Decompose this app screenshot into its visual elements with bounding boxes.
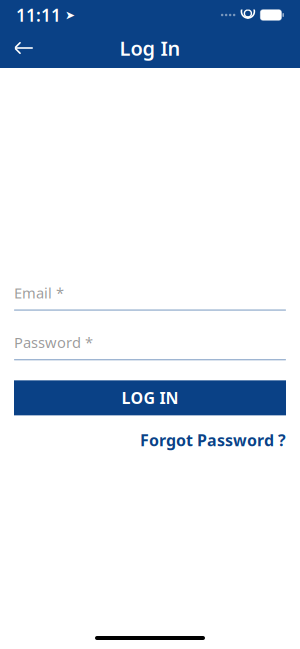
staticText: 11:11 xyxy=(16,3,61,26)
staticText: Forgot Password ? xyxy=(140,429,286,451)
staticText: Email * xyxy=(14,283,64,302)
staticText: ➤ xyxy=(61,8,75,22)
staticText: LOG IN xyxy=(121,387,178,408)
button[interactable]: LOG IN xyxy=(14,380,286,415)
button[interactable]: Forgot Password ? xyxy=(140,425,286,455)
staticText: Password * xyxy=(14,333,93,352)
button[interactable]: Back xyxy=(2,30,46,66)
staticText: Log In xyxy=(119,35,180,61)
